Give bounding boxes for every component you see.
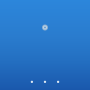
button[interactable]: Page 1 — [31, 81, 33, 83]
button[interactable]: Open app — [39, 21, 51, 33]
button[interactable]: Page 3 — [57, 81, 59, 83]
button[interactable]: Page 2 — [44, 81, 46, 83]
